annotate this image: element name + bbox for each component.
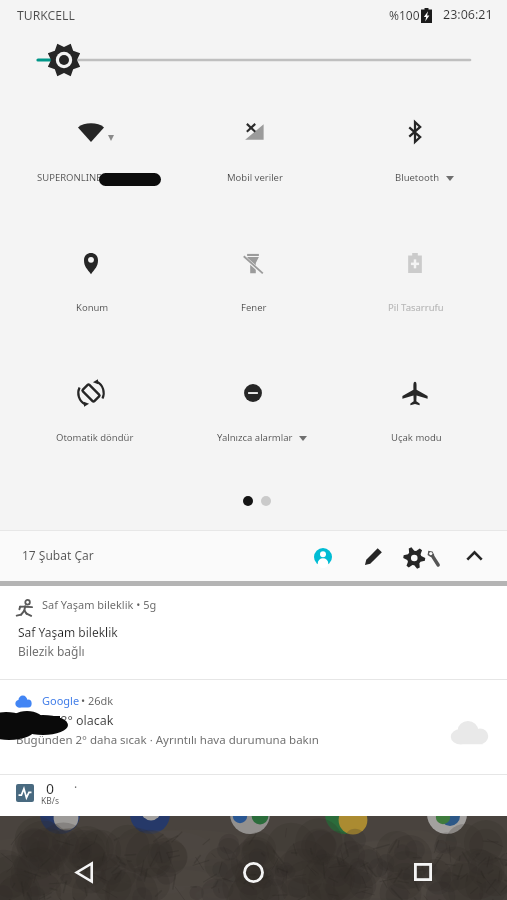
staticText: Konum [76, 301, 109, 314]
button[interactable] [12, 98, 170, 180]
staticText: %100 [389, 7, 420, 23]
button[interactable] [174, 229, 332, 311]
staticText: Otomatik döndür [56, 431, 134, 444]
staticText: • 26dk [81, 693, 114, 708]
staticText: Saf Yaşam bileklik [18, 624, 118, 640]
button[interactable] [336, 98, 494, 180]
staticText: Bluetooth [395, 171, 440, 184]
button[interactable] [174, 98, 332, 180]
staticText: SUPERONLINE [37, 171, 102, 184]
button[interactable] [174, 359, 332, 441]
staticText: Bugün 8° olacak [18, 712, 114, 729]
button[interactable]: Back [0, 844, 169, 900]
staticText: Saf Yaşam bileklik • 5g [42, 597, 157, 612]
button[interactable] [12, 359, 170, 441]
button[interactable]: Home [169, 844, 338, 900]
staticText: Bugünden 2° daha sıcak · Ayrıntılı hava … [16, 732, 319, 748]
staticText: · [74, 779, 78, 795]
button[interactable]: User [300, 534, 345, 579]
staticText: 17 Şubat Çar [22, 547, 94, 563]
button[interactable]: 0 [0, 775, 507, 816]
staticText: TURKCELL [17, 7, 75, 24]
button[interactable] [12, 229, 170, 311]
staticText: Uçak modu [391, 431, 442, 444]
button[interactable]: Recents [338, 844, 507, 900]
staticText: Fener [241, 301, 267, 314]
staticText: Pil Tasarrufu [388, 301, 444, 314]
staticText: 0 [46, 779, 55, 798]
staticText: Yalnızca alarmlar [217, 431, 293, 444]
button[interactable] [336, 229, 494, 311]
button[interactable]: Google [0, 680, 507, 774]
staticText: Mobil veriler [227, 171, 283, 184]
staticText: 23:06:21 [443, 6, 493, 23]
button[interactable]: Edit [351, 534, 395, 578]
button[interactable] [0, 37, 507, 83]
staticText: KB/s [41, 795, 60, 807]
button[interactable] [336, 359, 494, 441]
button[interactable]: Collapse [452, 534, 496, 578]
button[interactable]: Settings [399, 534, 447, 582]
staticText: Bilezik bağlı [18, 643, 85, 659]
button[interactable]: Saf Yaşam bileklik • 5g [0, 586, 507, 679]
staticText: Google [42, 693, 80, 708]
